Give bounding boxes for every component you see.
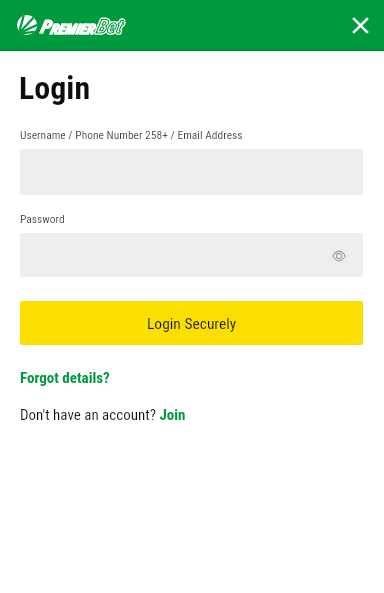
staticText: REMIER	[50, 21, 95, 37]
staticText: Bet	[96, 15, 121, 37]
button[interactable]: Forgot details?	[20, 369, 110, 387]
button[interactable]: Show password	[20, 233, 363, 277]
staticText: P	[40, 16, 50, 37]
button[interactable]: Login Securely	[20, 301, 363, 345]
staticText: Username / Phone Number 258+ / Email Add…	[20, 128, 243, 141]
button[interactable]: Don't have an account? Join	[20, 406, 186, 424]
staticText: P	[40, 16, 50, 37]
staticText: Don't have an account? Join	[20, 406, 186, 424]
staticText: Forgot details?	[20, 369, 110, 387]
staticText: REMIER	[50, 21, 95, 37]
staticText: Login Securely	[147, 315, 237, 333]
button[interactable]: Close	[342, 7, 378, 43]
staticText: Login	[19, 69, 91, 107]
button[interactable]: Show password	[326, 243, 352, 269]
staticText: Bet	[96, 15, 121, 37]
staticText: Password	[20, 212, 65, 225]
